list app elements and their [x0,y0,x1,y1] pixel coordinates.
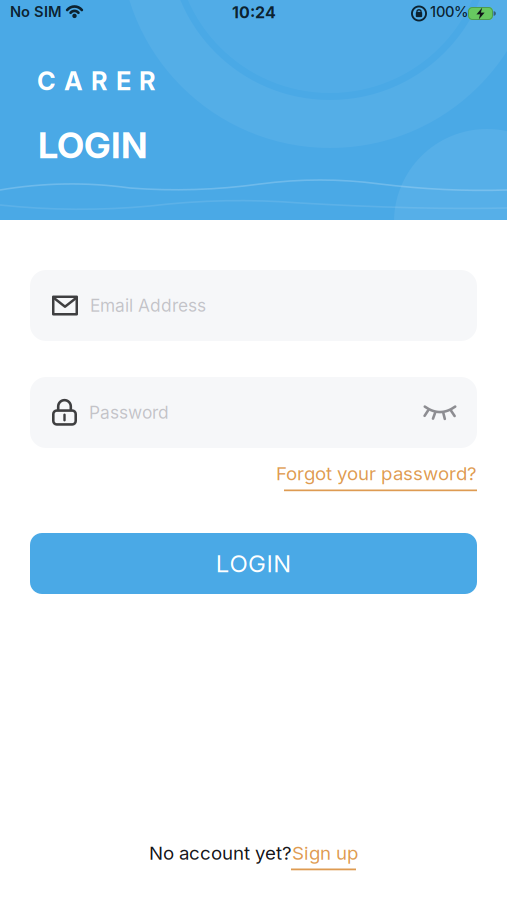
button[interactable]: Show password [424,405,477,420]
staticText: R [91,66,108,96]
staticText: G [248,549,266,578]
staticText: I [267,549,273,578]
staticText: LOGIN [38,124,147,166]
button[interactable]: L [30,533,477,594]
staticText: C [37,66,56,96]
staticText: Forgot your password? [276,462,477,484]
staticText: E [116,66,131,96]
staticText: 10:24 [232,3,276,22]
staticText: Sign up [292,842,358,864]
button[interactable]: Sign up [292,842,358,864]
staticText: O [229,549,247,578]
staticText: No SIM [10,3,62,20]
staticText: A [64,66,83,96]
button[interactable]: Forgot your password? [276,462,477,484]
staticText: 100% [430,3,469,20]
staticText: Password [89,402,169,423]
staticText: Email Address [90,295,206,316]
staticText: L [216,549,229,578]
staticText: N [273,549,291,578]
staticText: No account yet? [149,842,292,864]
staticText: R [139,66,156,96]
